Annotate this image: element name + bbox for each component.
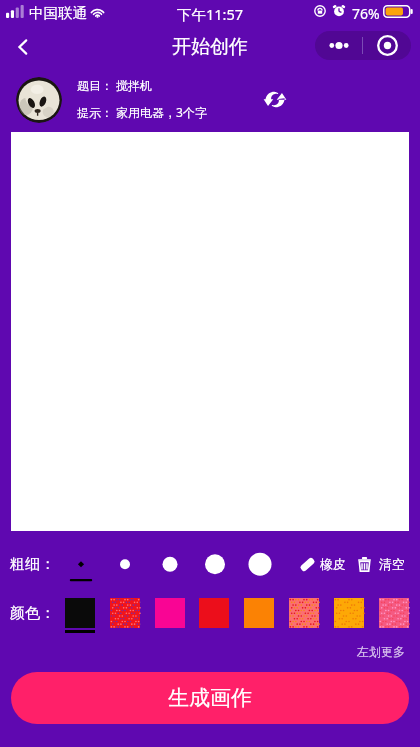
staticText: 生成画作 [168, 685, 252, 711]
staticText: 中国联通 [29, 4, 87, 22]
staticText: 下午11:57 [177, 4, 244, 24]
button[interactable]: More [315, 31, 362, 60]
staticText: 提示： 家用电器，3个字 [77, 104, 207, 120]
staticText: 粗细： [10, 555, 55, 574]
button[interactable]: Color 7 [334, 598, 364, 633]
button[interactable]: Color 5 [244, 598, 274, 633]
button[interactable]: Brush size 4 [195, 545, 235, 585]
button[interactable]: Brush size 3 [150, 545, 190, 585]
button[interactable]: Color 6 [289, 598, 319, 633]
staticText: 76% [352, 4, 380, 23]
button[interactable]: Color 2 [110, 598, 140, 633]
button[interactable]: Brush size 5 [240, 545, 280, 585]
button[interactable]: Color 4 [199, 598, 229, 633]
button[interactable]: 橡皮 [298, 552, 346, 576]
staticText: 开始创作 [172, 35, 248, 59]
staticText: 颜色： [10, 604, 55, 623]
button[interactable]: Color 1 [65, 598, 95, 633]
button[interactable]: Back [6, 30, 40, 64]
staticText: 题目： 搅拌机 [77, 77, 153, 93]
staticText: 清空 [379, 556, 405, 572]
button[interactable]: Brush size 1 [61, 545, 101, 585]
button[interactable]: 生成画作 [11, 672, 409, 724]
button[interactable]: Brush size 2 [105, 545, 145, 585]
button[interactable]: Color 3 [155, 598, 185, 633]
button[interactable]: 清空 [358, 552, 405, 576]
button[interactable]: Refresh [258, 83, 291, 116]
staticText: 橡皮 [320, 556, 346, 572]
button[interactable]: Color 8 [379, 598, 409, 633]
staticText: 左划更多 [357, 644, 405, 659]
button[interactable]: Close [363, 31, 411, 60]
